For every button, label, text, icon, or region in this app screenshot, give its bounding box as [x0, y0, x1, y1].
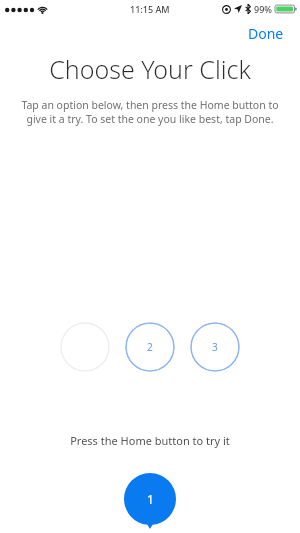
staticText: 99% [254, 3, 272, 15]
staticText: 3 [212, 340, 218, 354]
staticText: Choose Your Click [49, 52, 251, 86]
staticText: 2 [147, 340, 153, 354]
button[interactable]: Click option 3 [190, 322, 240, 372]
button[interactable]: Click option 1 [60, 322, 110, 372]
staticText: Done [248, 24, 284, 43]
button[interactable]: Click option 2 [125, 322, 175, 372]
staticText: 1 [147, 491, 154, 507]
staticText: 11:15 AM [130, 3, 170, 15]
staticText: Press the Home button to try it [70, 433, 230, 448]
button[interactable]: Done [244, 22, 288, 45]
staticText: Tap an option below, then press the Home… [21, 98, 279, 126]
button[interactable]: Home button click style 1 [124, 473, 176, 529]
